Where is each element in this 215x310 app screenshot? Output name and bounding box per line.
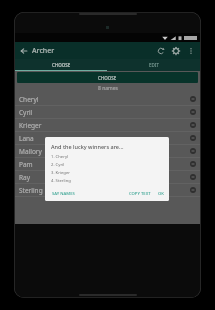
button[interactable]: CHOOSE [17,72,198,83]
button[interactable]: Settings [168,42,183,59]
staticText: Archer [32,46,55,56]
button[interactable]: SAY NAMES [51,190,76,198]
staticText: Ray [19,173,31,182]
staticText: Cyril [19,108,33,117]
staticText: 8 names [98,85,118,92]
staticText: EDIT [149,62,159,68]
staticText: Cheryl [19,95,39,104]
button[interactable]: Krieger [15,119,200,131]
staticText: SAY NAMES [52,191,75,197]
staticText: Mallory [19,147,42,156]
button[interactable]: Remove Cyril [186,106,200,118]
button[interactable]: Lana [15,132,200,144]
staticText: CHOOSE [98,75,117,81]
button[interactable]: More options [183,42,198,59]
staticText: CHOOSE [52,62,71,68]
button[interactable]: Remove Lana [186,132,200,144]
staticText: Sterling [19,186,43,195]
button[interactable]: Remove Pam [186,158,200,170]
staticText: OK [158,191,164,197]
staticText: 1. Cheryl [51,154,69,160]
button[interactable]: Cheryl [15,93,200,105]
staticText: 4. Sterling [51,178,71,184]
staticText: Krieger [19,121,42,130]
staticText: COPY TEXT [129,191,151,197]
button[interactable]: Remove Mallory [186,145,200,157]
button[interactable]: CHOOSE [15,59,107,70]
button[interactable]: EDIT [107,59,200,70]
button[interactable]: Navigate up [15,42,32,59]
button[interactable]: Cyril [15,106,200,118]
button[interactable]: COPY TEXT [128,190,152,198]
staticText: Pam [19,160,33,169]
button[interactable]: Refresh [153,42,168,59]
button[interactable]: Sterling [15,184,200,196]
button[interactable]: Mallory [15,145,200,157]
button[interactable]: Ray [15,171,200,183]
staticText: And the lucky winners are... [51,143,124,150]
button[interactable]: Remove Ray [186,171,200,183]
button[interactable]: Pam [15,158,200,170]
staticText: 3. Krieger [51,170,71,176]
button[interactable]: Remove Krieger [186,119,200,131]
button[interactable]: Remove Sterling [186,184,200,196]
button[interactable]: Remove Cheryl [186,93,200,105]
staticText: 2. Cyril [51,162,65,168]
button[interactable]: OK [157,190,165,198]
staticText: Lana [19,134,34,143]
